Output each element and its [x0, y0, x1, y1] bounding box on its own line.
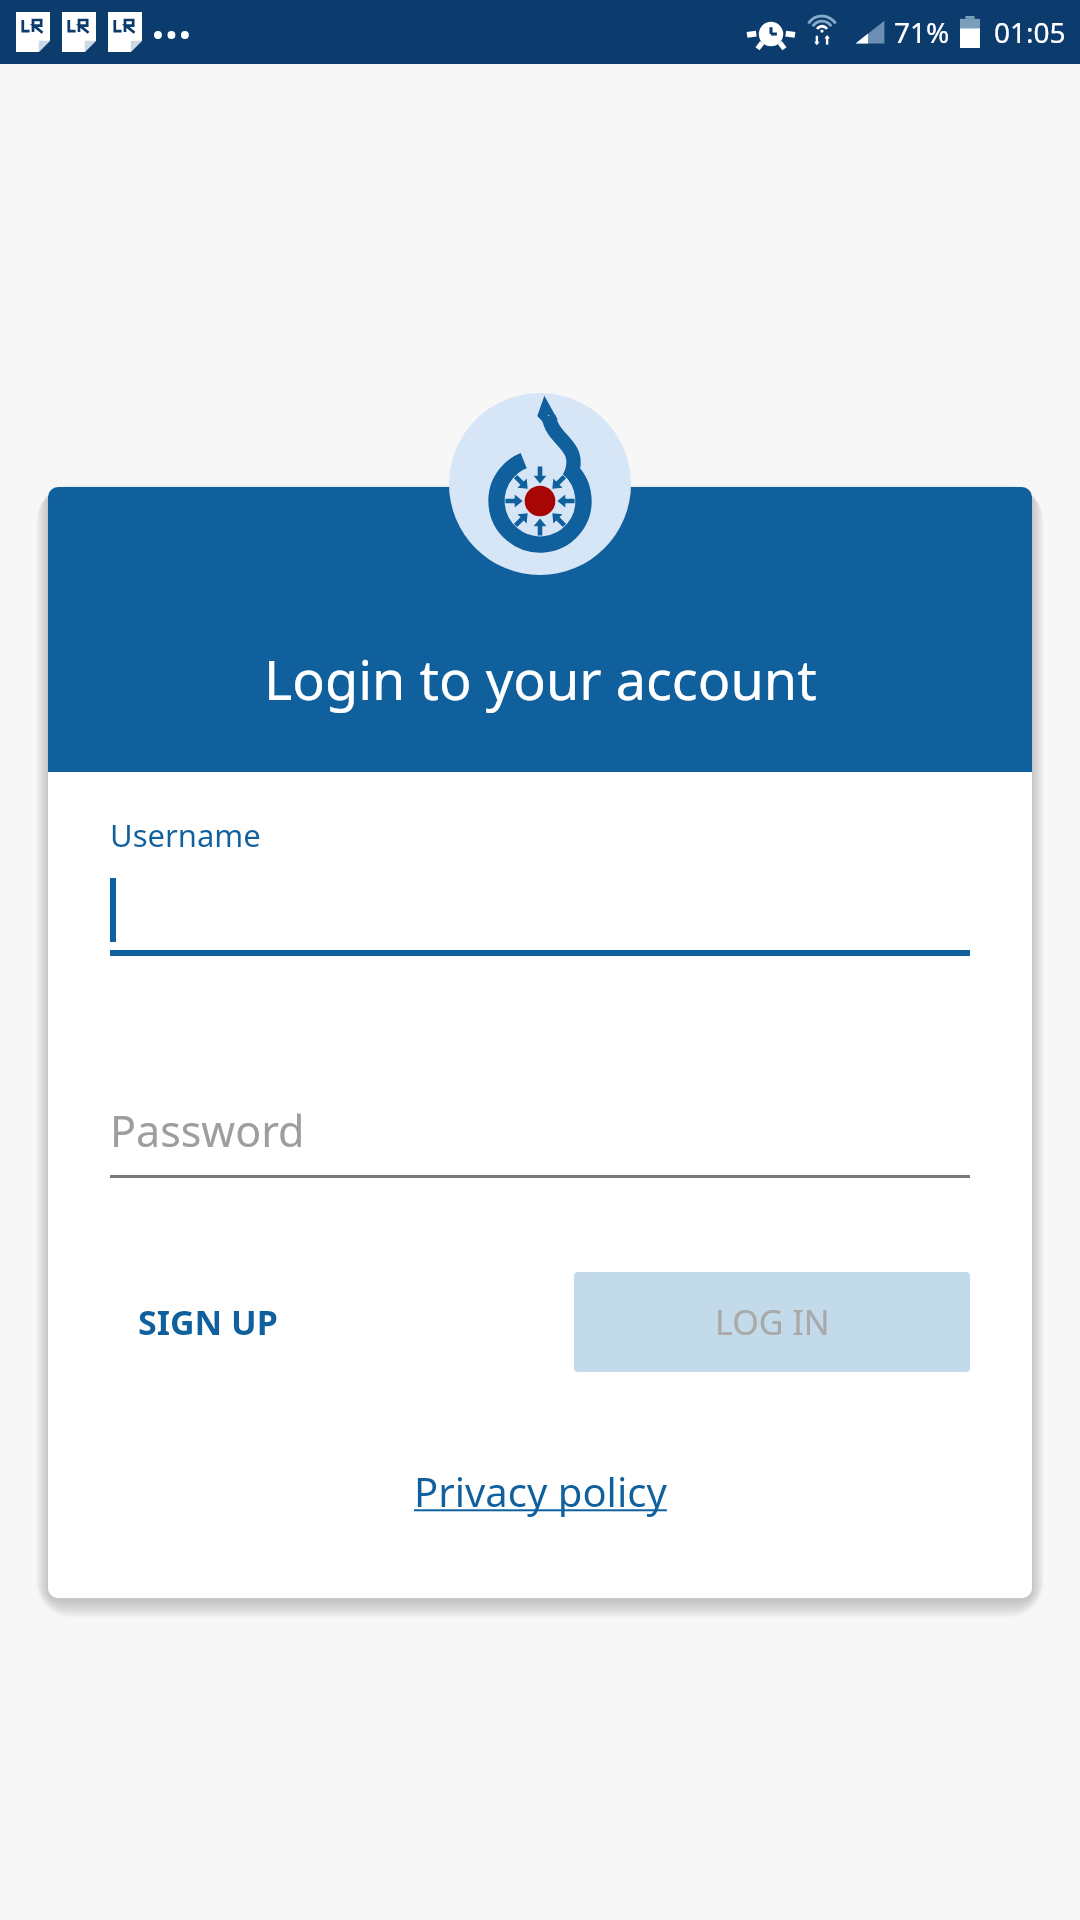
other: App logo	[449, 393, 631, 575]
button[interactable]	[110, 856, 970, 956]
staticText: LOG IN	[715, 1299, 830, 1345]
staticText: Login to your account	[264, 642, 817, 716]
button[interactable]: Privacy policy	[396, 1454, 685, 1528]
staticText: Username	[110, 814, 261, 856]
staticText: Privacy policy	[414, 1464, 667, 1518]
staticText: Password	[110, 1101, 305, 1160]
button[interactable]: LOG IN	[574, 1272, 970, 1372]
staticText: 71%	[894, 13, 950, 51]
staticText: 01:05	[994, 13, 1066, 51]
staticText: SIGN UP	[138, 1299, 278, 1345]
button[interactable]: SIGN UP	[110, 1275, 306, 1369]
button[interactable]: Password	[110, 1082, 970, 1178]
